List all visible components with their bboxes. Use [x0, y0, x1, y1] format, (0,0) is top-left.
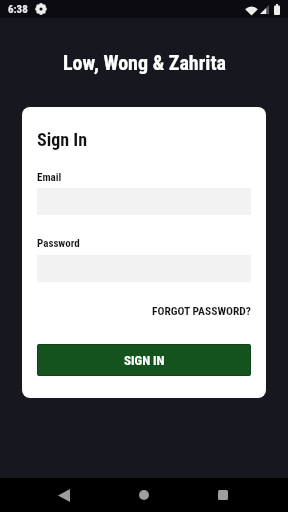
staticText: SIGN IN [124, 353, 165, 368]
button[interactable] [211, 483, 235, 507]
button[interactable] [132, 483, 156, 507]
staticText: 6:38 [8, 3, 28, 16]
button[interactable] [52, 483, 76, 507]
staticText: Sign In [37, 129, 88, 150]
button[interactable]: FORGOT PASSWORD? [152, 304, 251, 317]
staticText: FORGOT PASSWORD? [152, 304, 251, 317]
staticText: Password [37, 237, 80, 250]
staticText: Low, Wong & Zahrita [63, 51, 226, 74]
button[interactable]: SIGN IN [37, 344, 251, 376]
staticText: Email [37, 171, 62, 184]
